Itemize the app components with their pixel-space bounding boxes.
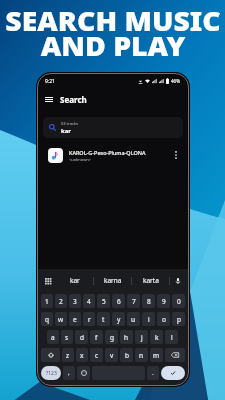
button[interactable]: 7: [127, 294, 140, 308]
staticText: 4: [87, 297, 91, 306]
button[interactable]: j: [135, 330, 148, 344]
button[interactable]: .: [147, 366, 159, 380]
staticText: d: [80, 333, 84, 342]
staticText: r: [88, 315, 91, 324]
button[interactable]: More options: [170, 149, 182, 161]
button[interactable]: w: [55, 312, 67, 326]
staticText: x: [80, 351, 84, 360]
button[interactable]: h: [120, 330, 133, 344]
button[interactable]: karta: [132, 269, 169, 292]
button[interactable]: Enter: [161, 366, 185, 380]
staticText: ?123: [46, 370, 57, 377]
staticText: w: [58, 315, 64, 324]
staticText: 3: [73, 297, 77, 306]
button[interactable]: 2: [55, 294, 67, 308]
button[interactable]: 53 tracks: [43, 117, 183, 138]
staticText: m: [153, 351, 160, 360]
button[interactable]: 0: [172, 294, 185, 308]
staticText: 9: [162, 297, 166, 306]
staticText: y: [117, 315, 121, 324]
button[interactable]: 8: [142, 294, 155, 308]
button[interactable]: Emoji: [77, 366, 90, 380]
button[interactable]: m: [150, 348, 163, 362]
staticText: e: [73, 315, 77, 324]
staticText: l: [171, 333, 173, 342]
button[interactable]: 5: [97, 294, 110, 308]
button[interactable]: u: [127, 312, 140, 326]
staticText: 6: [117, 297, 121, 306]
staticText: 2: [59, 297, 63, 306]
staticText: karna: [104, 276, 122, 285]
staticText: b: [125, 351, 129, 360]
button[interactable]: n: [135, 348, 148, 362]
button[interactable]: 6: [112, 294, 125, 308]
button[interactable]: s: [61, 330, 73, 344]
button[interactable]: b: [120, 348, 133, 362]
staticText: .: [152, 369, 154, 377]
staticText: p: [177, 315, 181, 324]
button[interactable]: KAROL-G-Peso-Pluma-QLONA: [38, 144, 188, 166]
staticText: SEARCH MUSIC: [5, 2, 221, 39]
button[interactable]: v: [105, 348, 118, 362]
button[interactable]: Menu: [42, 92, 56, 106]
staticText: j: [141, 333, 143, 342]
staticText: g: [110, 333, 114, 342]
staticText: 8: [147, 297, 151, 306]
button[interactable]: o: [157, 312, 170, 326]
staticText: karta: [143, 276, 159, 285]
button[interactable]: x: [76, 348, 88, 362]
button[interactable]: c: [90, 348, 103, 362]
staticText: u: [131, 315, 136, 324]
button[interactable]: r: [83, 312, 95, 326]
button[interactable]: f: [90, 330, 103, 344]
button[interactable]: i: [142, 312, 155, 326]
staticText: a: [51, 333, 55, 342]
staticText: t: [102, 315, 105, 324]
button[interactable]: [165, 348, 185, 362]
staticText: v: [110, 351, 114, 360]
button[interactable]: karna: [94, 269, 131, 292]
staticText: c: [95, 351, 99, 360]
button[interactable]: Keyboard settings: [40, 269, 56, 292]
button[interactable]: Voice input: [170, 269, 186, 292]
button[interactable]: t: [97, 312, 110, 326]
button[interactable]: g: [105, 330, 118, 344]
button[interactable]: z: [62, 348, 74, 362]
staticText: 1: [45, 297, 49, 306]
button[interactable]: l: [165, 330, 178, 344]
button[interactable]: y: [112, 312, 125, 326]
staticText: i: [148, 315, 150, 324]
staticText: kar: [70, 276, 80, 285]
button[interactable]: 1: [41, 294, 53, 308]
button[interactable]: e: [69, 312, 81, 326]
staticText: s: [65, 333, 69, 342]
staticText: k: [155, 333, 159, 342]
button[interactable]: 4: [83, 294, 95, 308]
staticText: kar: [61, 127, 71, 135]
button[interactable]: p: [172, 312, 185, 326]
staticText: 9:21: [45, 78, 55, 85]
button[interactable]: d: [75, 330, 88, 344]
staticText: 46%: [171, 78, 180, 84]
button[interactable]: ?123: [41, 366, 61, 380]
staticText: <unknown>: [69, 157, 92, 162]
button[interactable]: 9: [157, 294, 170, 308]
staticText: q: [45, 315, 49, 324]
button[interactable]: ,: [63, 366, 75, 380]
staticText: h: [124, 333, 129, 342]
button[interactable]: k: [150, 330, 163, 344]
staticText: o: [162, 315, 166, 324]
staticText: z: [66, 351, 70, 360]
staticText: Search: [60, 94, 87, 105]
staticText: 7: [132, 297, 136, 306]
button[interactable]: a: [47, 330, 59, 344]
button[interactable]: 3: [69, 294, 81, 308]
button[interactable]: q: [41, 312, 53, 326]
button[interactable]: kar: [56, 269, 93, 292]
staticText: 0: [177, 297, 181, 306]
staticText: f: [95, 333, 98, 342]
button[interactable]: [41, 348, 60, 362]
staticText: n: [139, 351, 144, 360]
staticText: AND PLAY: [41, 27, 185, 64]
